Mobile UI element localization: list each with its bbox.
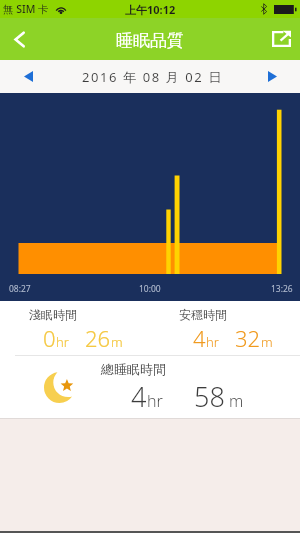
staticText: m [229, 390, 244, 412]
staticText: 2016 年 08 月 02 日 [82, 68, 223, 86]
staticText: m [111, 333, 123, 351]
staticText: 淺眠時間 [29, 307, 77, 322]
staticText: 08:27 [9, 283, 31, 295]
staticText: 4 [131, 378, 147, 415]
staticText: 上午10:12 [125, 2, 176, 17]
staticText: 4 [193, 323, 206, 353]
staticText: hr [56, 333, 69, 351]
staticText: 58 [194, 378, 225, 415]
staticText: 10:00 [139, 283, 161, 295]
button[interactable]: Next day [244, 60, 300, 93]
staticText: 總睡眠時間 [101, 361, 166, 377]
button[interactable]: Previous day [0, 60, 57, 93]
staticText: 26 [85, 323, 111, 353]
staticText: hr [147, 390, 163, 412]
staticText: 0 [43, 323, 56, 353]
staticText: m [261, 333, 273, 351]
staticText: 32 [235, 323, 261, 353]
staticText: 睡眠品質 [116, 30, 184, 51]
button[interactable]: Share [260, 18, 300, 60]
staticText: 無 SIM 卡 [3, 2, 49, 16]
staticText: 13:26 [271, 283, 293, 295]
staticText: hr [206, 333, 219, 351]
staticText: 安穩時間 [179, 307, 227, 322]
button[interactable]: Back [0, 18, 38, 60]
